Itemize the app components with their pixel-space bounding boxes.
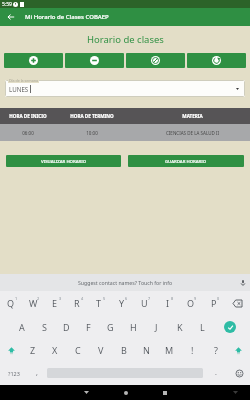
staticText: , [36,368,38,378]
button[interactable]: Suggest contact names? Touch for info [0,274,250,291]
button[interactable]: Enter [214,315,246,339]
button[interactable]: Home [106,385,145,400]
button[interactable]: X [44,339,66,361]
staticText: P [211,297,217,309]
staticText: VISUALIZAR HORARIO [41,158,87,164]
button[interactable]: Add class [4,53,63,68]
button[interactable]: Remove class [65,53,124,68]
staticText: D [63,321,70,333]
button[interactable]: A [11,315,33,339]
staticText: 10:00 [86,130,98,136]
button[interactable]: ?123 [0,361,27,385]
staticText: C [75,344,81,356]
button[interactable]: LUNES [5,80,245,97]
staticText: J [155,321,158,333]
staticText: Q [7,297,15,309]
button[interactable]: I [156,291,179,315]
button[interactable]: Y [110,291,133,315]
staticText: 7 [148,296,151,301]
staticText: L [200,321,205,333]
staticText: K [177,321,183,333]
staticText: Horario de clases [87,33,164,46]
button[interactable]: Back [67,385,106,400]
button[interactable]: B [112,339,135,361]
button[interactable]: O [179,291,202,315]
staticText: T [96,297,102,309]
staticText: G [107,321,114,333]
button[interactable]: Q [0,291,22,315]
button[interactable]: L [191,315,214,339]
button[interactable]: Z [22,339,44,361]
staticText: 5:59 [2,1,12,8]
staticText: Día de la semana [9,78,38,83]
staticText: W [29,297,38,309]
button[interactable]: R [66,291,88,315]
button[interactable]: P [202,291,225,315]
button[interactable]: Back [0,8,22,26]
button[interactable]: W [22,291,44,315]
staticText: R [74,297,80,309]
button[interactable]: Cancel [126,53,185,68]
staticText: 5 [103,296,106,301]
staticText: GUARDAR HORARIO [165,158,207,164]
button[interactable]: , [27,361,47,385]
staticText: Mi Horario de Clases COBAEP [25,13,109,21]
button[interactable]: S [33,315,55,339]
button[interactable]: Shift [227,339,250,361]
staticText: MATERIA [182,113,203,119]
button[interactable]: ! [181,339,204,361]
button[interactable]: VISUALIZAR HORARIO [6,155,121,167]
button[interactable]: Shift [0,339,22,361]
staticText: HORA DE INICIO [9,113,47,119]
button[interactable]: Emoji [229,361,250,385]
staticText: X [52,344,58,356]
button[interactable]: U [133,291,156,315]
staticText: Y [119,297,125,309]
staticText: 0 [217,296,220,301]
staticText: LUNES [9,85,29,93]
button[interactable]: M [158,339,181,361]
staticText: H [130,321,137,333]
staticText: 6 [125,296,128,301]
staticText: 4 [81,296,84,301]
button[interactable]: K [168,315,191,339]
button[interactable]: Refresh [187,53,246,68]
button[interactable]: Recents [145,385,184,400]
staticText: ?123 [8,370,20,377]
staticText: 9 [194,296,197,301]
button[interactable]: N [135,339,158,361]
staticText: ! [191,344,194,356]
button[interactable]: E [44,291,66,315]
staticText: CIENCIAS DE LA SALUD II [166,130,219,136]
button[interactable]: ? [204,339,227,361]
button[interactable]: D [55,315,77,339]
button[interactable]: C [66,339,89,361]
button[interactable]: 06:00 [0,124,250,141]
staticText: E [52,297,58,309]
button[interactable]: H [122,315,145,339]
staticText: A [19,321,25,333]
staticText: F [86,321,91,333]
staticText: Z [30,344,36,356]
staticText: S [42,321,47,333]
staticText: V [98,344,104,356]
button[interactable]: Backspace [225,291,250,315]
button[interactable]: Hide keyboard [220,385,250,400]
button[interactable]: V [89,339,112,361]
staticText: 06:00 [22,130,34,136]
staticText: HORA DE TERMINO [70,113,114,119]
staticText: 8 [171,296,174,301]
staticText: . [215,368,217,378]
button[interactable]: G [99,315,122,339]
other: Microphone [241,280,245,286]
staticText: 2 [37,296,40,301]
staticText: O [187,297,195,309]
staticText: I [166,297,170,309]
button[interactable]: T [88,291,110,315]
button[interactable]: F [77,315,99,339]
button[interactable]: GUARDAR HORARIO [128,155,244,167]
button[interactable]: J [145,315,168,339]
staticText: M [165,344,174,356]
